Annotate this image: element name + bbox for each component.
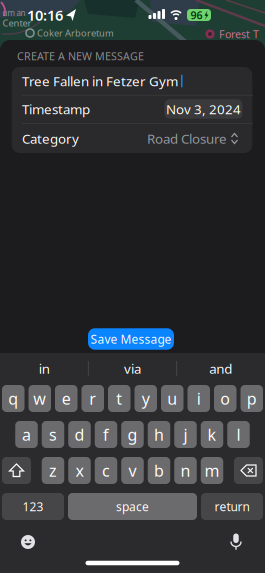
staticText: h (154, 424, 164, 445)
staticText: r (89, 388, 96, 409)
staticText: y (142, 388, 150, 409)
button[interactable]: Tree Fallen in Fetzer Gym (22, 67, 247, 94)
staticText: l (236, 424, 240, 445)
staticText: v (128, 460, 136, 481)
staticText: n (180, 460, 190, 481)
staticText: p (247, 388, 257, 409)
staticText: t (116, 388, 122, 409)
button[interactable]: space (68, 493, 197, 520)
staticText: j (183, 424, 187, 445)
button[interactable]: w (28, 385, 51, 412)
staticText: Tree Fallen in Fetzer Gym (22, 72, 178, 90)
staticText: Nov 3, 2024 (166, 100, 241, 118)
staticText: u (167, 388, 177, 409)
button[interactable]: q (2, 385, 24, 412)
button[interactable]: in (1, 354, 87, 382)
staticText: c (102, 460, 110, 481)
button[interactable]: r (81, 385, 104, 412)
button[interactable]: y (134, 385, 157, 412)
staticText: space (116, 498, 149, 514)
button[interactable]: b (148, 457, 170, 484)
button[interactable]: and (178, 354, 264, 382)
button[interactable]: d (68, 421, 91, 448)
button[interactable]: Save Message (88, 328, 174, 350)
button[interactable]: f (95, 421, 117, 448)
staticText: via (124, 360, 141, 377)
button[interactable]: o (214, 385, 236, 412)
button[interactable]: a (15, 421, 38, 448)
staticText: k (207, 424, 216, 445)
staticText: d (74, 424, 84, 445)
button[interactable]: return (201, 493, 263, 520)
staticText: f (103, 424, 109, 445)
staticText: i (197, 388, 201, 409)
button[interactable]: 123 (2, 493, 64, 520)
staticText: return (214, 498, 249, 514)
staticText: in (39, 360, 50, 377)
button[interactable]: h (148, 421, 170, 448)
button[interactable]: m (201, 457, 223, 484)
button[interactable]: t (108, 385, 130, 412)
staticText: 96 (190, 8, 202, 22)
button[interactable]: n (174, 457, 197, 484)
button[interactable]: Dictate (229, 533, 243, 550)
staticText: q (8, 388, 18, 409)
button[interactable]: j (174, 421, 197, 448)
button[interactable]: Category (22, 124, 238, 152)
button[interactable]: x (68, 457, 91, 484)
staticText: and (209, 360, 232, 377)
button[interactable]: Emoji (21, 535, 35, 549)
button[interactable]: Shift (2, 457, 31, 484)
button[interactable]: i (187, 385, 210, 412)
button[interactable]: u (161, 385, 183, 412)
staticText: Center (2, 17, 31, 29)
button[interactable]: Delete (234, 457, 263, 484)
button[interactable]: s (42, 421, 64, 448)
staticText: s (49, 424, 57, 445)
staticText: b (154, 460, 164, 481)
staticText: w (33, 388, 46, 409)
staticText: a (22, 424, 31, 445)
staticText: CREATE A NEW MESSAGE (17, 49, 144, 63)
staticText: Road Closure (147, 130, 227, 147)
button[interactable]: c (95, 457, 117, 484)
staticText: Forest T (219, 27, 259, 41)
button[interactable]: g (121, 421, 144, 448)
button[interactable]: p (240, 385, 263, 412)
button[interactable]: v (121, 457, 144, 484)
staticText: g (127, 424, 137, 445)
staticText: e (62, 388, 71, 409)
staticText: 10:16 (27, 5, 63, 25)
staticText: um an (2, 8, 25, 18)
button[interactable]: e (55, 385, 77, 412)
button[interactable]: l (227, 421, 250, 448)
staticText: Coker Arboretum (37, 27, 114, 39)
staticText: x (75, 460, 83, 481)
button[interactable]: Nov 3, 2024 (164, 99, 242, 119)
staticText: Category (22, 130, 79, 147)
staticText: o (220, 388, 230, 409)
button[interactable]: via (89, 354, 175, 382)
staticText: m (204, 460, 219, 481)
staticText: z (49, 460, 57, 481)
staticText: 123 (22, 498, 43, 514)
button[interactable]: z (42, 457, 64, 484)
staticText: Timestamp (22, 100, 90, 118)
staticText: Save Message (90, 331, 171, 347)
button[interactable]: k (201, 421, 223, 448)
